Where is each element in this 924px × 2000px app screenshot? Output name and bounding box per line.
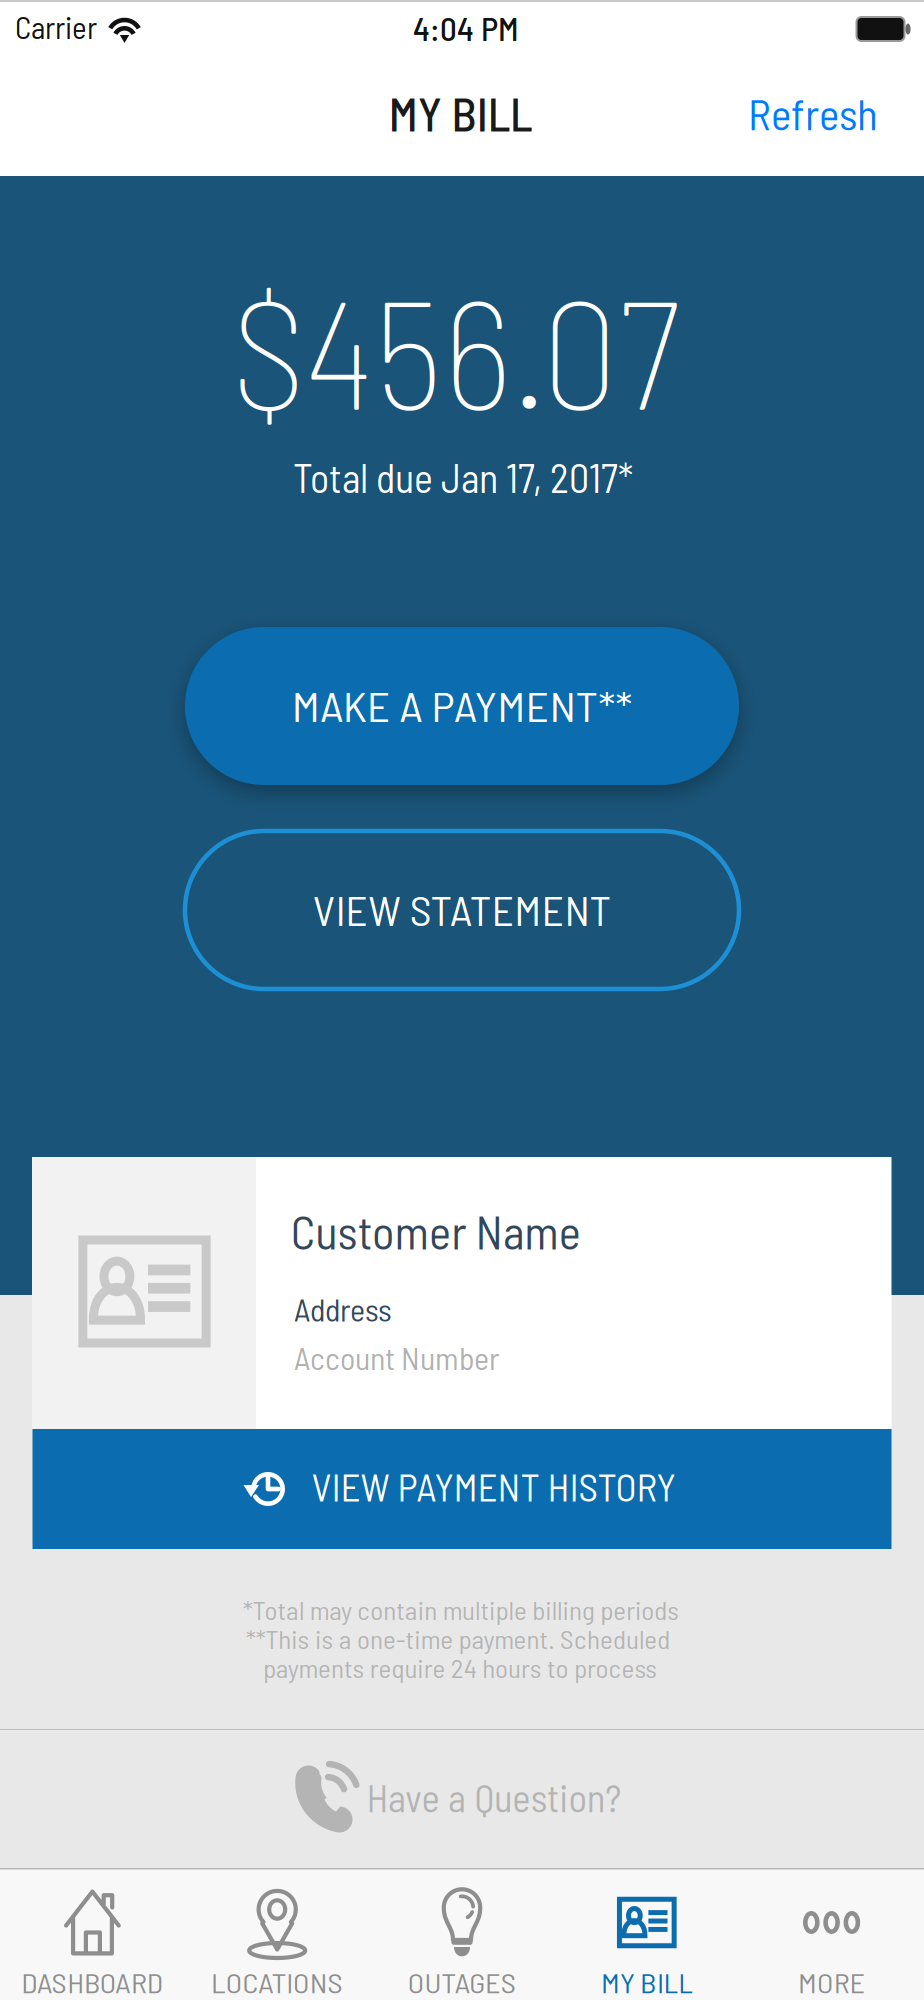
staticText: MORE — [802, 1966, 862, 1999]
button[interactable]: VIEW STATEMENT — [185, 831, 739, 989]
button[interactable]: MAKE A PAYMENT** — [185, 627, 739, 785]
staticText: Carrier — [15, 8, 97, 45]
staticText: VIEW STATEMENT — [325, 886, 599, 934]
staticText: Address — [294, 1289, 392, 1328]
staticText: *Total may contain multiple billing peri… — [259, 1595, 663, 1625]
staticText: Customer Name — [293, 1203, 579, 1259]
staticText: payments require 24 hours to process — [277, 1653, 642, 1683]
staticText: 4:04 PM — [413, 8, 519, 48]
button[interactable]: MORE — [739, 1869, 924, 2000]
staticText: Account Number — [294, 1338, 500, 1376]
staticText: $456.07 — [235, 258, 677, 440]
staticText: Have a Question? — [369, 1774, 619, 1820]
button[interactable]: OUTAGES — [370, 1869, 554, 2000]
staticText: **This is a one-time payment. Scheduled — [261, 1624, 654, 1654]
button[interactable]: VIEW PAYMENT HISTORY — [32, 1429, 891, 1549]
button[interactable]: Have a Question? — [0, 1730, 924, 1868]
button[interactable]: DASHBOARD — [0, 1869, 185, 2000]
staticText: MY BILL — [606, 1966, 688, 1999]
staticText: Refresh — [748, 87, 878, 139]
staticText: MY BILL — [389, 86, 531, 141]
staticText: OUTAGES — [413, 1966, 510, 1999]
staticText: DASHBOARD — [29, 1966, 156, 1999]
button[interactable]: MY BILL — [554, 1869, 739, 2000]
button[interactable]: Refresh — [698, 65, 878, 161]
staticText: MAKE A PAYMENT** — [312, 682, 612, 730]
staticText: LOCATIONS — [218, 1966, 336, 1999]
staticText: VIEW PAYMENT HISTORY — [311, 1463, 675, 1509]
staticText: Total due Jan 17, 2017* — [293, 453, 633, 501]
button[interactable]: LOCATIONS — [185, 1869, 370, 2000]
